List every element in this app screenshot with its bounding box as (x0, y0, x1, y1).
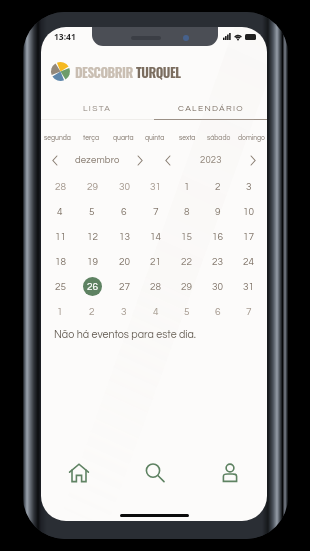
button[interactable]: Anterior (48, 153, 62, 167)
button[interactable]: 30 (202, 274, 233, 299)
button[interactable]: Seguinte (133, 153, 147, 167)
staticText: quarta (113, 134, 134, 141)
button[interactable]: 31 (140, 174, 171, 199)
staticText: sexta (179, 134, 196, 141)
button[interactable]: 2 (202, 174, 233, 199)
button[interactable]: 29 (76, 174, 108, 199)
staticText: 13 (119, 232, 130, 242)
button[interactable]: Pesquisar (117, 451, 192, 494)
button[interactable]: 22 (171, 249, 202, 274)
staticText: TURQUEL (136, 62, 181, 81)
staticText: 12 (87, 232, 98, 242)
staticText: 31 (150, 182, 161, 192)
button[interactable]: 2 (76, 299, 108, 324)
button[interactable]: 10 (233, 199, 264, 224)
button[interactable]: Perfil (192, 451, 267, 494)
staticText: 3 (121, 307, 127, 317)
staticText: CALENDÁRIO (178, 104, 244, 113)
staticText: 1 (57, 307, 63, 317)
staticText: 17 (243, 232, 254, 242)
staticText: sábado (207, 134, 231, 141)
button[interactable]: 3 (233, 174, 264, 199)
staticText: 31 (243, 282, 254, 292)
staticText: 7 (153, 207, 159, 217)
button[interactable]: 29 (171, 274, 202, 299)
button[interactable]: 5 (171, 299, 202, 324)
button[interactable]: 3 (108, 299, 140, 324)
staticText: 4 (153, 307, 159, 317)
button[interactable]: 5 (76, 199, 108, 224)
button[interactable]: 6 (108, 199, 140, 224)
staticText: 5 (89, 207, 95, 217)
staticText: 19 (87, 257, 98, 267)
staticText: 7 (246, 307, 252, 317)
staticText: Não há eventos para este dia. (54, 329, 196, 340)
button[interactable]: 16 (202, 224, 233, 249)
button[interactable]: 12 (76, 224, 108, 249)
staticText: segunda (44, 134, 71, 141)
staticText: 9 (215, 207, 221, 217)
button[interactable]: 18 (44, 249, 76, 274)
button[interactable]: 17 (233, 224, 264, 249)
button[interactable]: CALENDÁRIO (154, 97, 267, 119)
button[interactable]: 7 (233, 299, 264, 324)
button[interactable]: 7 (140, 199, 171, 224)
staticText: 2 (215, 182, 221, 192)
button[interactable]: 30 (108, 174, 140, 199)
button[interactable]: 1 (171, 174, 202, 199)
button[interactable]: 14 (140, 224, 171, 249)
staticText: 14 (150, 232, 161, 242)
button[interactable]: 23 (202, 249, 233, 274)
staticText: 1 (184, 182, 190, 192)
staticText: DESCOBRIR (75, 62, 133, 81)
staticText: dezembro (75, 155, 120, 165)
staticText: 29 (181, 282, 192, 292)
staticText: 21 (150, 257, 161, 267)
staticText: 26 (87, 282, 98, 292)
staticText: 23 (212, 257, 223, 267)
button[interactable]: 24 (233, 249, 264, 274)
button[interactable]: 4 (44, 199, 76, 224)
staticText: 3 (246, 182, 252, 192)
staticText: 10 (243, 207, 254, 217)
button[interactable]: 28 (140, 274, 171, 299)
staticText: LISTA (83, 104, 112, 113)
button[interactable]: 4 (140, 299, 171, 324)
button[interactable]: 19 (76, 249, 108, 274)
staticText: quinta (145, 134, 165, 141)
staticText: 27 (119, 282, 130, 292)
staticText: 18 (55, 257, 66, 267)
button[interactable]: Seguinte (246, 153, 260, 167)
staticText: 29 (87, 182, 98, 192)
staticText: domingo (238, 134, 265, 141)
button[interactable]: 8 (171, 199, 202, 224)
button[interactable]: 25 (44, 274, 76, 299)
staticText: 13:41 (54, 31, 76, 43)
staticText: 2023 (200, 155, 222, 165)
staticText: 5 (184, 307, 190, 317)
button[interactable]: 11 (44, 224, 76, 249)
button[interactable]: 6 (202, 299, 233, 324)
staticText: 11 (55, 232, 66, 242)
staticText: 30 (212, 282, 223, 292)
button[interactable]: 26 (76, 274, 108, 299)
button[interactable]: 31 (233, 274, 264, 299)
staticText: 30 (119, 182, 130, 192)
button[interactable]: 27 (108, 274, 140, 299)
staticText: terça (83, 134, 99, 141)
button[interactable]: Início (41, 451, 117, 494)
button[interactable]: Anterior (161, 153, 175, 167)
staticText: 15 (181, 232, 192, 242)
button[interactable]: LISTA (41, 97, 154, 119)
button[interactable]: 13 (108, 224, 140, 249)
staticText: 6 (215, 307, 221, 317)
staticText: 20 (119, 257, 130, 267)
button[interactable]: 28 (44, 174, 76, 199)
staticText: 2 (89, 307, 95, 317)
button[interactable]: 15 (171, 224, 202, 249)
staticText: 22 (181, 257, 192, 267)
button[interactable]: 1 (44, 299, 76, 324)
button[interactable]: 20 (108, 249, 140, 274)
button[interactable]: 21 (140, 249, 171, 274)
button[interactable]: 9 (202, 199, 233, 224)
